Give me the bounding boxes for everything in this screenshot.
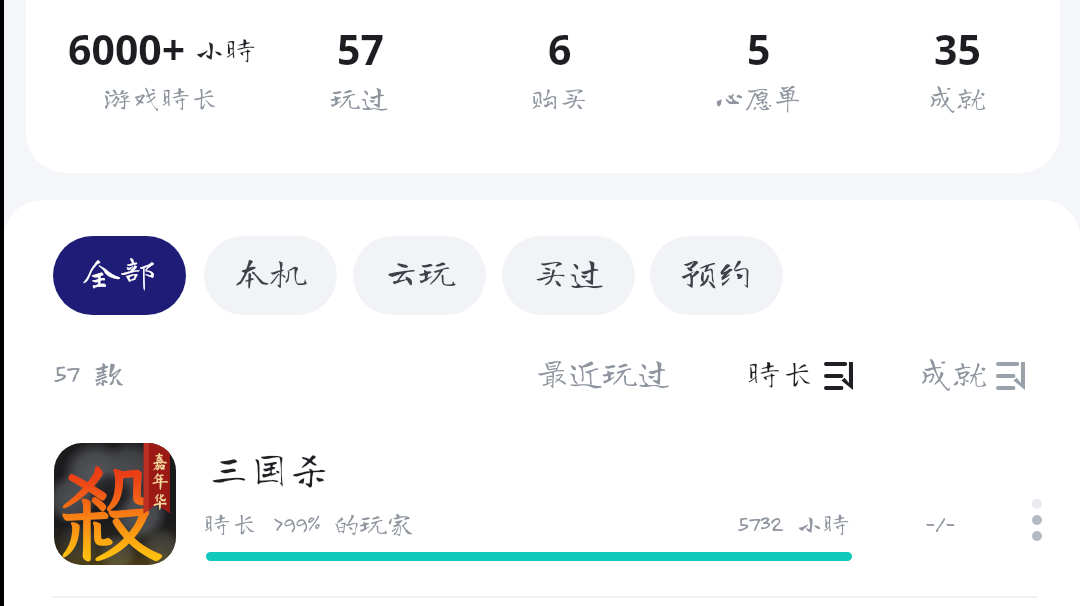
- button[interactable]: 最近玩过: [535, 342, 671, 402]
- staticText: 6000+: [68, 21, 186, 77]
- staticText: -/-: [925, 509, 955, 536]
- button[interactable]: 本机: [204, 236, 337, 315]
- staticText: 殺: [56, 443, 165, 563]
- staticText: 57 款: [53, 357, 125, 388]
- button[interactable]: 成就: [919, 342, 1025, 402]
- button[interactable]: 云玩: [353, 236, 486, 315]
- button[interactable]: 买过: [502, 236, 635, 315]
- staticText: 时长: [747, 355, 815, 389]
- staticText: 成就: [919, 355, 987, 389]
- button[interactable]: 57: [261, 21, 460, 111]
- staticText: 本机: [234, 253, 307, 289]
- button[interactable]: 预约: [650, 236, 783, 315]
- staticText: 玩过: [331, 82, 390, 111]
- staticText: 57: [337, 21, 384, 77]
- staticText: 云玩: [383, 253, 456, 289]
- staticText: 5: [747, 21, 771, 77]
- staticText: 买过: [532, 253, 605, 289]
- button[interactable]: 5: [659, 21, 858, 111]
- staticText: 嘉年华: [150, 452, 170, 510]
- button[interactable]: More options: [1015, 495, 1059, 539]
- staticText: 5732 小时: [737, 509, 851, 536]
- staticText: 全部: [83, 253, 156, 289]
- staticText: 35: [934, 21, 981, 77]
- staticText: 预约: [680, 253, 753, 289]
- button[interactable]: 时长: [747, 342, 853, 402]
- staticText: 购买: [530, 82, 589, 111]
- staticText: 三国杀: [209, 448, 329, 488]
- staticText: 时长 >99% 的玩家: [204, 509, 414, 536]
- button[interactable]: 6: [460, 21, 659, 111]
- button[interactable]: 殺: [4, 438, 1080, 588]
- staticText: 心愿单: [715, 82, 803, 111]
- staticText: 最近玩过: [535, 355, 671, 389]
- staticText: 游戏时长: [103, 82, 220, 111]
- staticText: 成就: [928, 82, 987, 111]
- button[interactable]: 57 款: [53, 342, 125, 402]
- button[interactable]: 6000+: [62, 21, 261, 111]
- staticText: 6: [548, 21, 572, 77]
- staticText: 小时: [194, 33, 256, 64]
- button[interactable]: 全部: [53, 236, 186, 315]
- button[interactable]: 35: [858, 21, 1057, 111]
